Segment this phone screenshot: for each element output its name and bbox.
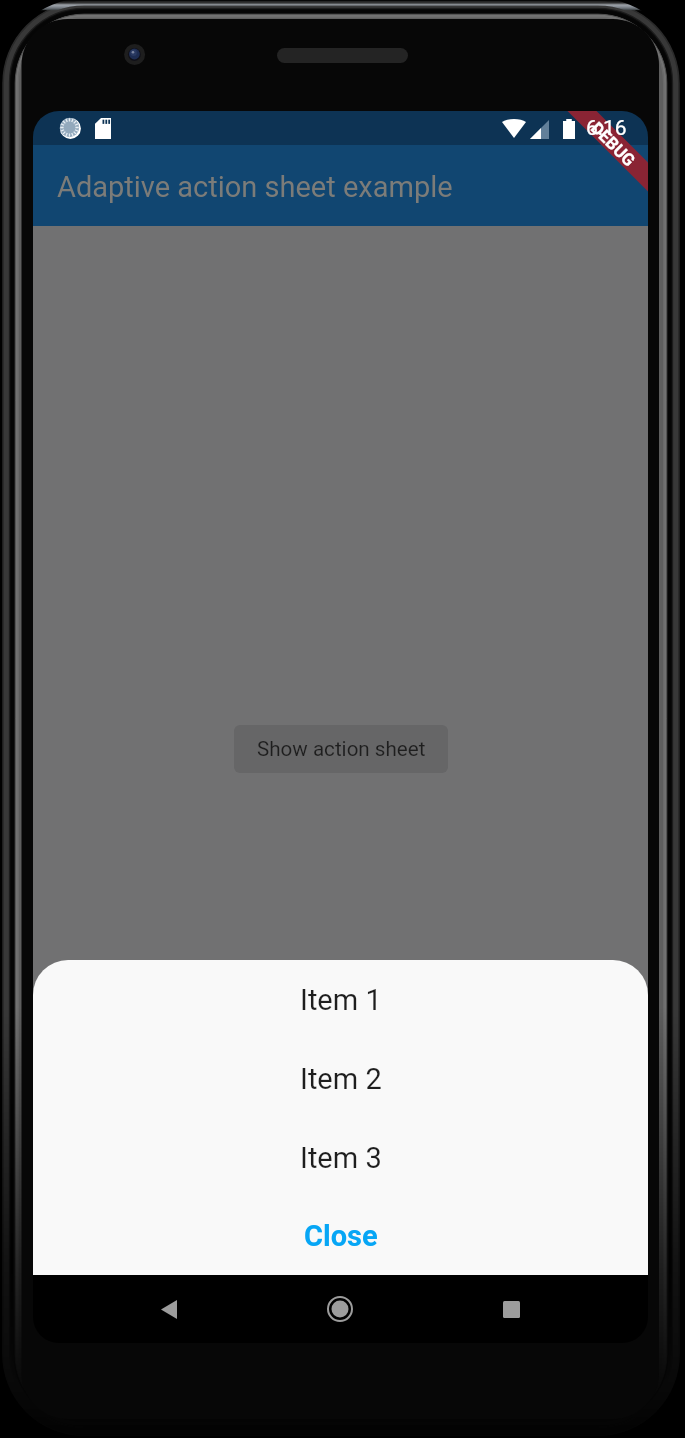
button[interactable]: Item 3: [33, 1119, 648, 1197]
button[interactable]: Close: [33, 1197, 648, 1275]
button[interactable]: Item 1: [33, 961, 648, 1039]
button[interactable]: Show action sheet: [234, 725, 448, 773]
button[interactable]: Item 2: [33, 1040, 648, 1118]
button[interactable]: Recents: [480, 1275, 542, 1343]
staticText: Adaptive action sheet example: [57, 170, 453, 204]
staticText: DEBUG: [587, 118, 640, 171]
staticText: Item 3: [300, 1141, 382, 1175]
button[interactable]: Back: [138, 1275, 200, 1343]
staticText: Show action sheet: [257, 737, 426, 761]
staticText: Item 2: [300, 1062, 382, 1096]
staticText: Item 1: [300, 983, 382, 1017]
staticText: Close: [304, 1219, 378, 1253]
button[interactable]: Home: [309, 1275, 371, 1343]
staticText: 6:16: [586, 116, 627, 141]
